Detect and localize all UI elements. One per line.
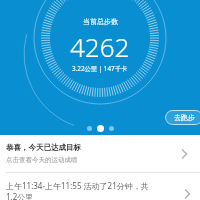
staticText: 去跑步 bbox=[174, 113, 195, 122]
button[interactable]: 上午11:34-上午11:55 活动了21分钟，共 bbox=[0, 180, 200, 200]
button[interactable]: 恭喜，今天已达成目标 bbox=[0, 135, 200, 172]
staticText: 点击查看今天的运动成绩 bbox=[6, 156, 78, 164]
staticText: 1.2公里 bbox=[6, 191, 34, 200]
staticText: 恭喜，今天已达成目标 bbox=[6, 143, 81, 152]
staticText: 当前总步数 bbox=[83, 17, 118, 26]
button[interactable]: 去跑步 bbox=[165, 110, 200, 125]
staticText: 4262 bbox=[70, 29, 130, 64]
staticText: 上午11:34-上午11:55 活动了21分钟，共 bbox=[6, 180, 149, 191]
staticText: 3.22公里 | 147千卡 bbox=[72, 64, 128, 73]
